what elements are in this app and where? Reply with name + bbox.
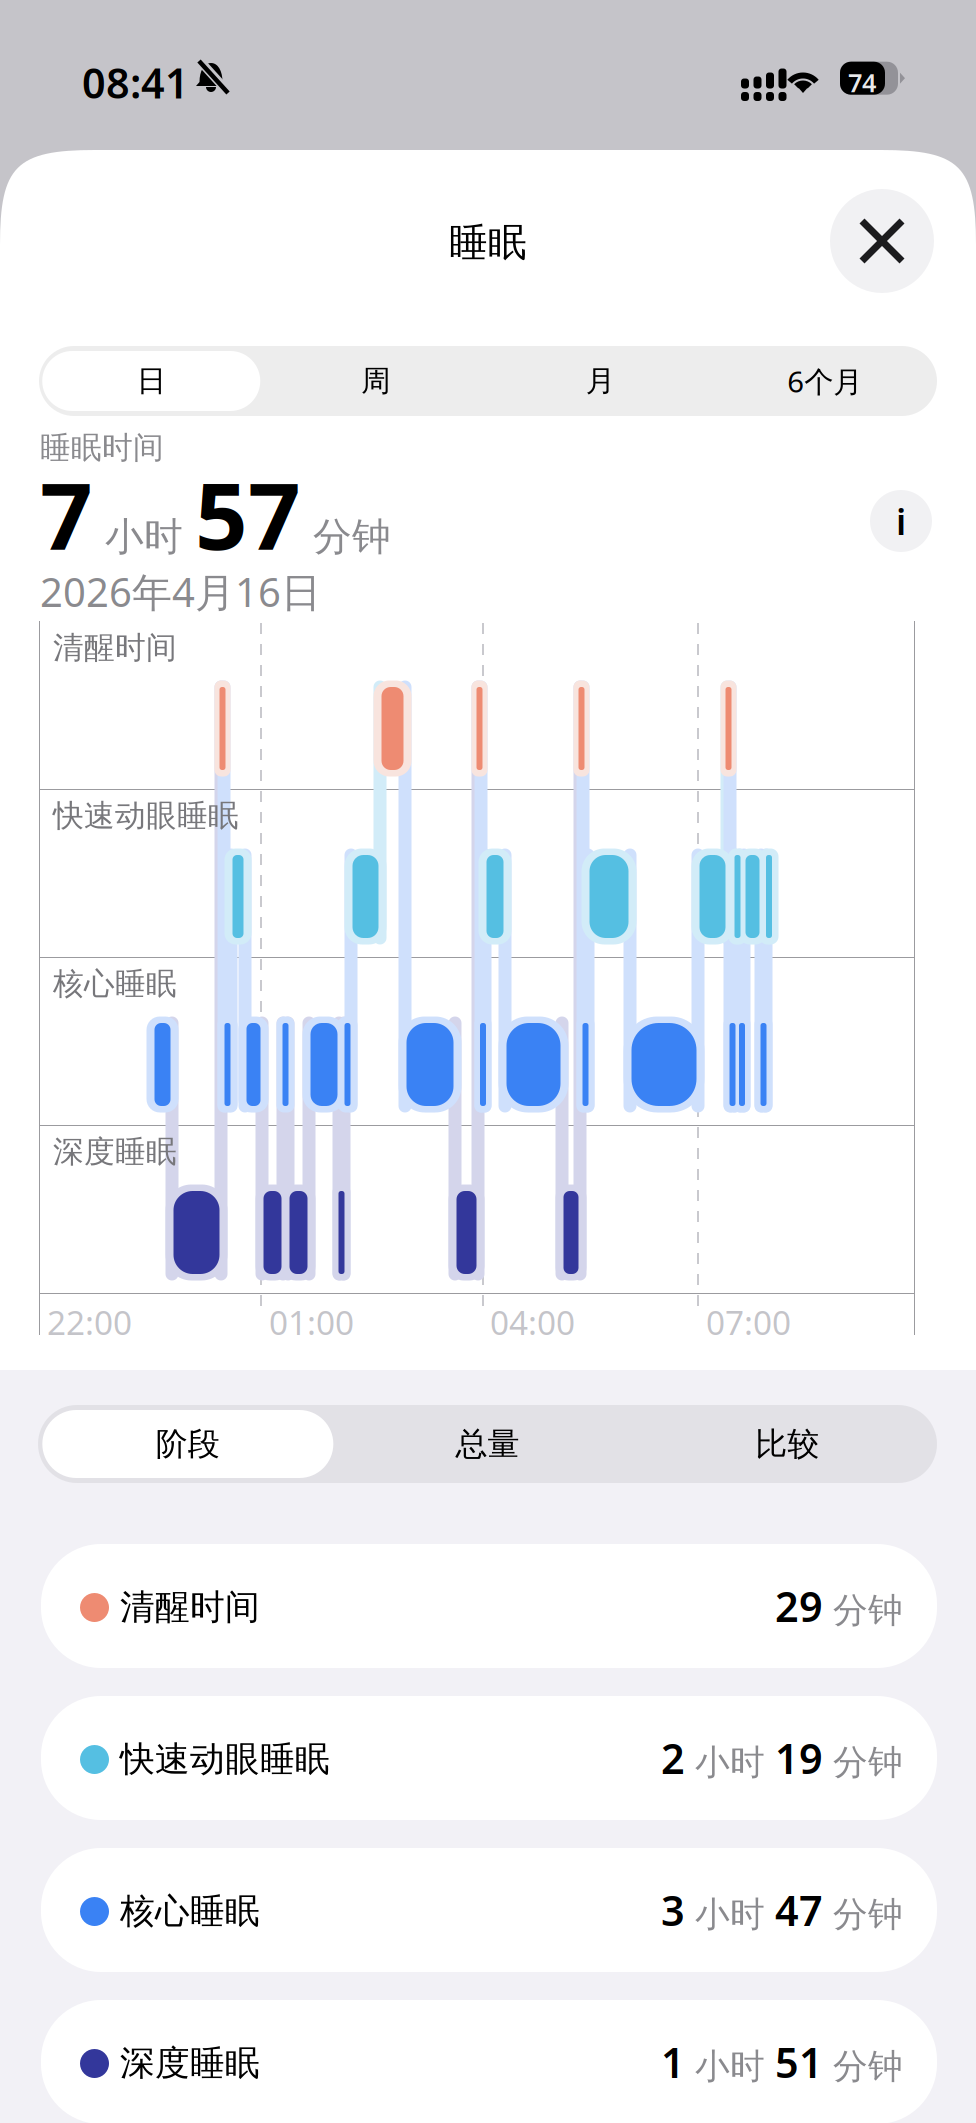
staticText: 2026年4月16日	[40, 565, 321, 618]
staticText: 周	[361, 363, 390, 399]
button[interactable]: 核心睡眠	[41, 1848, 937, 1972]
button[interactable]: 快速动眼睡眠	[41, 1696, 937, 1820]
staticText: 07:00	[706, 1300, 791, 1344]
staticText: 睡眠时间	[40, 429, 164, 467]
button[interactable]: 清醒时间	[41, 1544, 937, 1668]
staticText: 清醒时间	[120, 1586, 260, 1629]
staticText: 核心睡眠	[120, 1890, 260, 1933]
staticText: 74	[848, 66, 876, 99]
staticText: 深度睡眠	[53, 1133, 177, 1171]
staticText: 比较	[755, 1424, 819, 1464]
staticText: 57	[195, 453, 301, 575]
staticText: 清醒时间	[53, 629, 177, 667]
button[interactable]: 日	[39, 346, 263, 416]
button[interactable]: 6个月	[712, 346, 937, 416]
staticText: 04:00	[490, 1300, 575, 1344]
staticText: 分钟	[823, 1893, 903, 1936]
button[interactable]: 信息	[870, 490, 932, 552]
staticText: 快速动眼睡眠	[120, 1738, 330, 1781]
staticText: 2	[661, 1731, 685, 1785]
staticText: 08:41	[82, 55, 189, 110]
button[interactable]: 比较	[637, 1405, 937, 1483]
staticText: 22:00	[47, 1300, 132, 1344]
staticText: 7	[40, 453, 93, 575]
staticText: 日	[137, 363, 166, 399]
staticText: 分钟	[823, 1589, 903, 1632]
staticText: 月	[586, 363, 615, 399]
staticText: 47	[775, 1883, 823, 1937]
button[interactable]: 深度睡眠	[41, 2000, 937, 2123]
staticText: 01:00	[269, 1300, 354, 1344]
button[interactable]: 关闭	[830, 189, 934, 293]
staticText: 阶段	[156, 1424, 220, 1464]
staticText: 小时	[685, 1741, 775, 1784]
staticText: 19	[775, 1731, 823, 1785]
staticText: i	[896, 497, 906, 545]
staticText: 1	[661, 2035, 685, 2089]
button[interactable]: 总量	[338, 1405, 637, 1483]
button[interactable]: 周	[263, 346, 488, 416]
staticText: 6个月	[787, 361, 862, 400]
staticText: 深度睡眠	[120, 2042, 260, 2085]
staticText: 快速动眼睡眠	[53, 797, 239, 835]
staticText: 总量	[455, 1424, 519, 1464]
staticText: 小时	[685, 1893, 775, 1936]
staticText: 29	[775, 1579, 823, 1633]
staticText: 核心睡眠	[53, 965, 177, 1003]
staticText: 3	[661, 1883, 685, 1937]
staticText: 小时	[685, 2045, 775, 2088]
staticText: 51	[775, 2035, 823, 2089]
staticText: 分钟	[301, 513, 391, 561]
staticText: 睡眠	[449, 219, 527, 266]
button[interactable]: 阶段	[38, 1405, 338, 1483]
button[interactable]: 月	[488, 346, 712, 416]
staticText: 分钟	[823, 2045, 903, 2088]
staticText: 小时	[93, 513, 195, 561]
staticText: 分钟	[823, 1741, 903, 1784]
